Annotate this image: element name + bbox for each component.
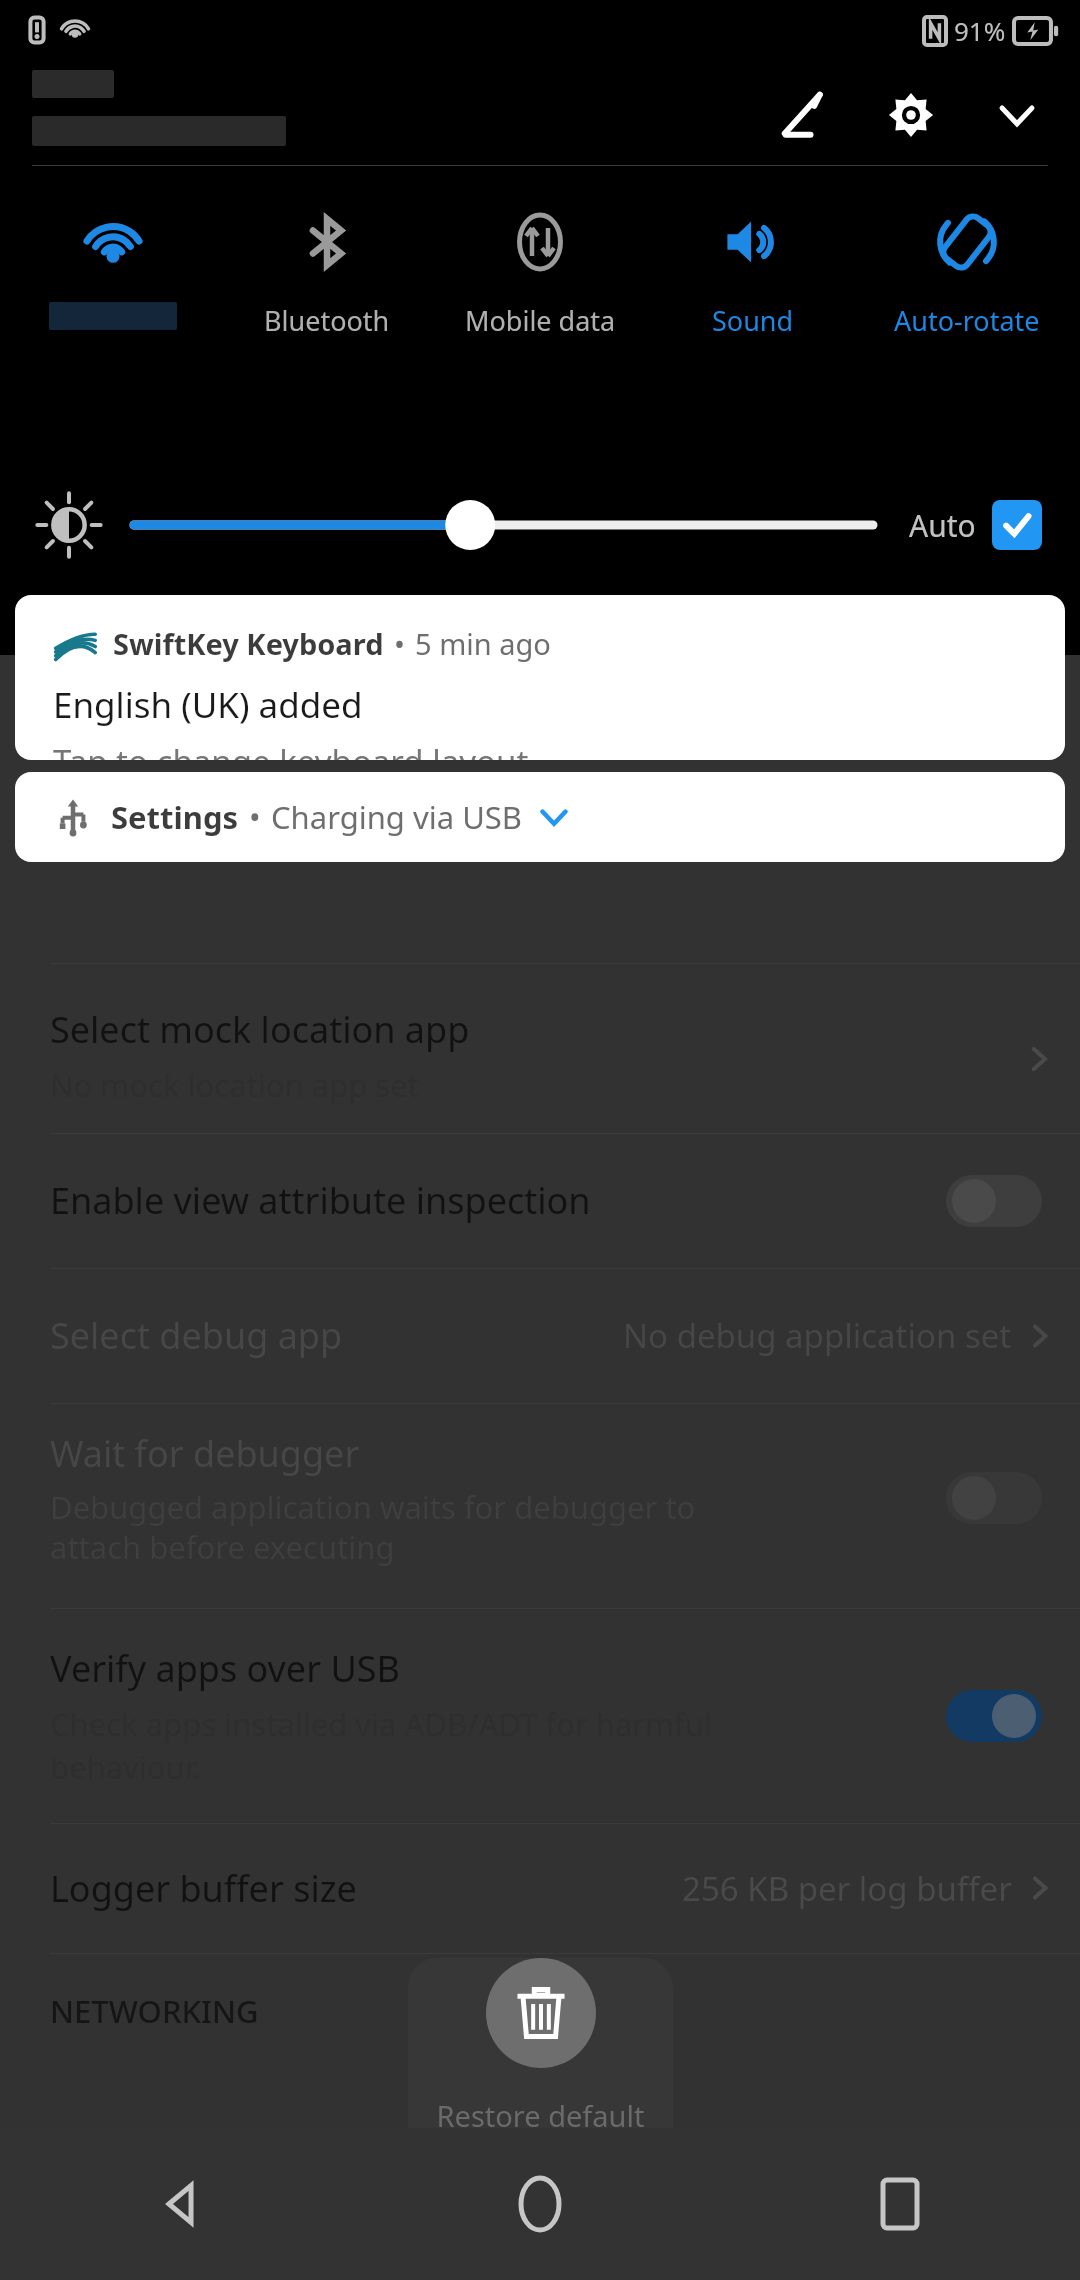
button[interactable]: Mobile data bbox=[440, 190, 640, 410]
staticText: Select mock location app bbox=[50, 1005, 470, 1054]
staticText: Enable view attribute inspection bbox=[50, 1176, 946, 1225]
button[interactable]: Select mock location app bbox=[0, 975, 1080, 1110]
button[interactable]: Sound bbox=[653, 190, 853, 410]
staticText: • bbox=[249, 796, 261, 838]
staticText: NETWORKING bbox=[50, 1990, 259, 2032]
button[interactable]: Home bbox=[360, 2128, 720, 2280]
staticText: Charging via USB bbox=[271, 796, 523, 838]
staticText: English (UK) added bbox=[53, 681, 363, 729]
staticText: Restore default settings bbox=[408, 2096, 673, 2172]
staticText: Logger buffer size bbox=[50, 1864, 682, 1913]
button[interactable]: Enable view attribute inspection bbox=[0, 1133, 1080, 1268]
button[interactable]: Restore default settings bbox=[486, 1958, 596, 2068]
button[interactable]: Auto-rotate bbox=[867, 190, 1067, 410]
button[interactable]: Edit bbox=[770, 80, 840, 150]
staticText: Settings bbox=[111, 796, 239, 838]
staticText: Debugged application waits for debugger … bbox=[50, 1486, 696, 1568]
button[interactable]: Wi-Fi bbox=[13, 190, 213, 410]
staticText: 91% bbox=[954, 13, 1006, 48]
button[interactable]: Auto bbox=[901, 500, 1050, 550]
button[interactable]: Back bbox=[0, 2128, 360, 2280]
button[interactable]: Toggle on bbox=[946, 1690, 1042, 1742]
staticText: Verify apps over USB bbox=[50, 1644, 400, 1693]
staticText: 5 min ago bbox=[415, 624, 551, 663]
staticText: Mobile data bbox=[465, 302, 616, 339]
staticText: Tap to change keyboard layout bbox=[53, 739, 529, 760]
button[interactable]: Wait for debugger bbox=[0, 1403, 1080, 1593]
button[interactable]: Recents bbox=[720, 2128, 1080, 2280]
button[interactable]: Settings bbox=[15, 772, 1065, 862]
staticText: • bbox=[394, 624, 405, 663]
staticText: SwiftKey Keyboard bbox=[113, 624, 384, 663]
staticText: Select debug app bbox=[50, 1311, 623, 1360]
staticText: Wait for debugger bbox=[50, 1429, 360, 1478]
button[interactable]: SwiftKey Keyboard bbox=[15, 595, 1065, 760]
staticText: Sound bbox=[712, 302, 794, 339]
button[interactable]: Select debug app bbox=[0, 1268, 1080, 1403]
button[interactable]: Logger buffer size bbox=[0, 1823, 1080, 1953]
button[interactable]: Toggle off bbox=[946, 1472, 1042, 1524]
button[interactable]: Bluetooth bbox=[227, 190, 427, 410]
staticText: No debug application set bbox=[623, 1313, 1012, 1358]
button[interactable]: Settings bbox=[876, 80, 946, 150]
button[interactable]: Verify apps over USB bbox=[0, 1608, 1080, 1823]
button[interactable]: Brightness bbox=[134, 485, 873, 565]
staticText: 256 KB per log buffer bbox=[682, 1866, 1012, 1911]
staticText: Bluetooth bbox=[264, 302, 390, 339]
button[interactable]: Toggle off bbox=[946, 1175, 1042, 1227]
button[interactable]: Collapse bbox=[982, 80, 1052, 150]
staticText: Auto bbox=[909, 505, 976, 546]
staticText: Auto-rotate bbox=[894, 302, 1040, 339]
